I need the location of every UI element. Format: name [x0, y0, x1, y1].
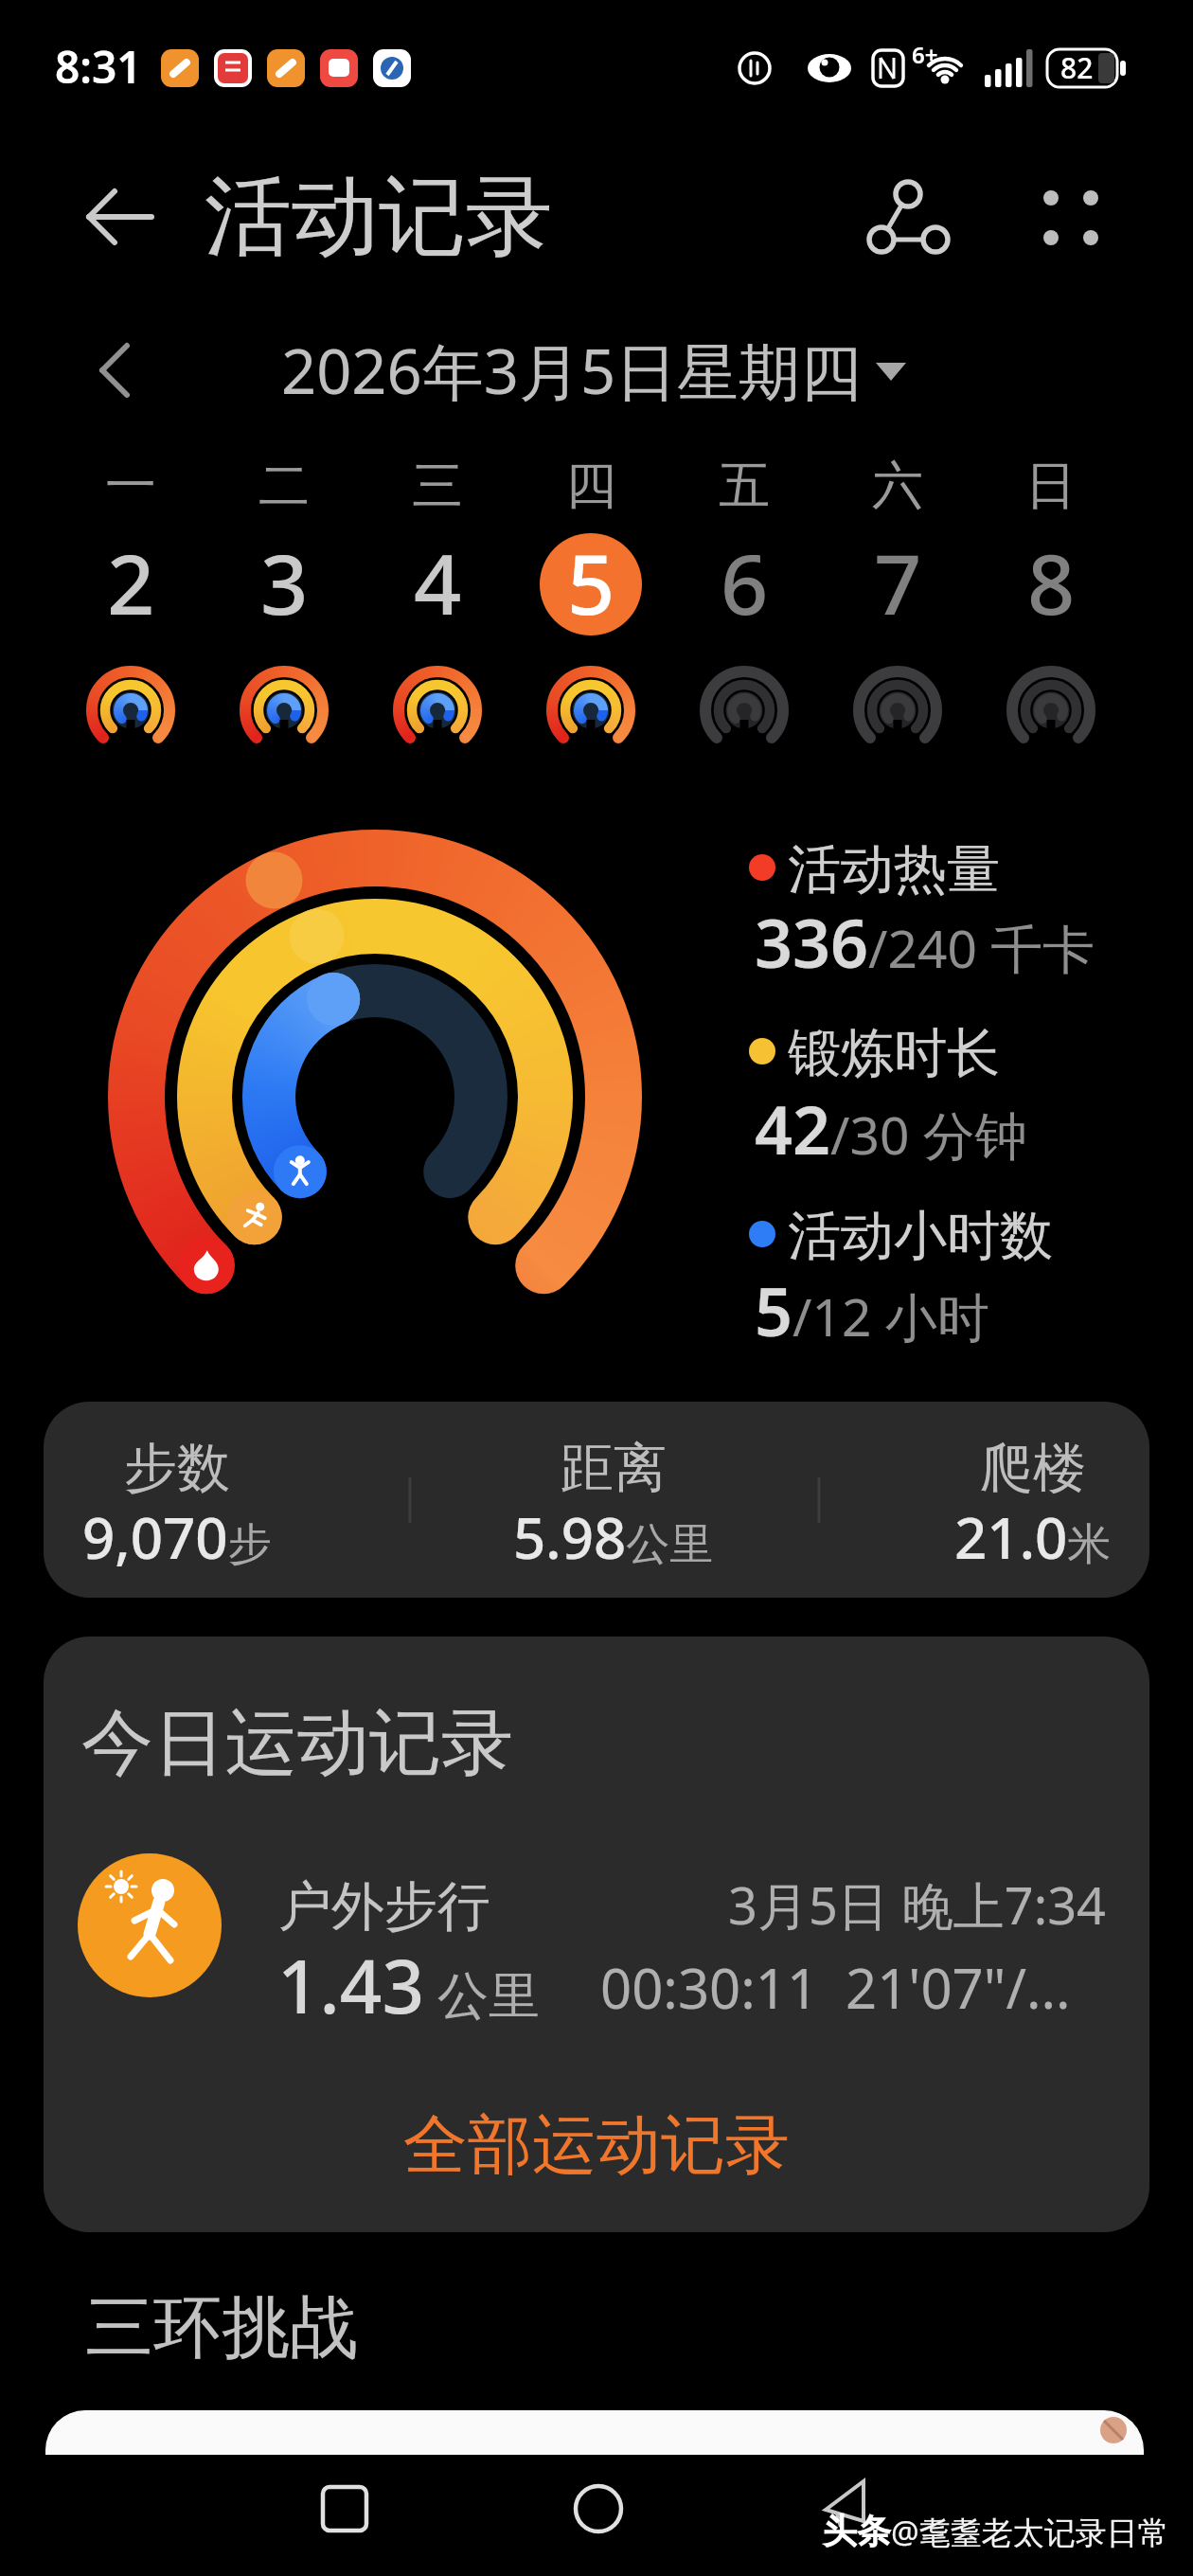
staticText: 1.43 公里	[277, 1935, 541, 2035]
staticText: 3月5日 晚上7:34	[728, 1869, 1106, 1940]
button[interactable]	[985, 511, 1117, 767]
button[interactable]	[678, 511, 810, 767]
staticText: 2026年3月5日星期四	[281, 329, 863, 413]
staticText: 6+	[912, 39, 938, 70]
staticText: 活动热量	[788, 836, 1000, 903]
staticText: 五	[719, 454, 770, 518]
staticText: 活动记录	[205, 162, 553, 272]
staticText: 21'07"/...	[846, 1950, 1071, 2025]
staticText: 一	[105, 454, 156, 518]
staticText: 户外步行	[278, 1873, 490, 1941]
staticText: 336/240 千卡	[755, 897, 1095, 987]
button[interactable]	[64, 511, 197, 767]
button[interactable]	[76, 1837, 1117, 2027]
staticText: 6	[721, 526, 769, 639]
button[interactable]	[44, 1402, 1149, 1598]
staticText: 8:31	[55, 37, 142, 97]
staticText: 四	[565, 454, 616, 518]
button[interactable]	[831, 511, 964, 767]
staticText: 三	[412, 454, 463, 518]
staticText: 21.0米	[954, 1498, 1112, 1576]
staticText: 8	[1027, 526, 1076, 639]
staticText: @耄耋老太记录日常	[891, 2511, 1169, 2553]
staticText: 00:30:11	[600, 1950, 819, 2025]
button[interactable]	[299, 2463, 390, 2554]
staticText: 锻炼时长	[788, 1020, 1000, 1087]
staticText: 4	[414, 526, 462, 639]
staticText: 全部运动记录	[403, 2105, 790, 2187]
staticText: 3	[260, 526, 309, 639]
button[interactable]	[265, 331, 928, 407]
staticText: 2	[107, 526, 155, 639]
staticText: 爬楼	[980, 1435, 1086, 1502]
staticText: 9,070步	[82, 1498, 272, 1576]
staticText: 今日运动记录	[81, 1698, 513, 1789]
staticText: 二	[258, 454, 310, 518]
staticText: 82	[1060, 48, 1094, 87]
staticText: 42/30 分钟	[755, 1083, 1027, 1173]
button[interactable]	[852, 175, 956, 260]
staticText: 日	[1025, 454, 1077, 518]
staticText: 5	[567, 526, 615, 639]
button[interactable]	[369, 2098, 824, 2192]
button[interactable]	[45, 2410, 1144, 2455]
staticText: 5/12 小时	[755, 1265, 989, 1355]
staticText: 距离	[561, 1435, 667, 1502]
button[interactable]	[66, 185, 161, 251]
staticText: 六	[872, 454, 923, 518]
staticText: 7	[874, 526, 922, 639]
button[interactable]	[525, 511, 657, 767]
staticText: 5.98公里	[513, 1498, 714, 1576]
button[interactable]	[553, 2463, 644, 2554]
staticText: 步数	[124, 1435, 230, 1502]
staticText: 头条	[823, 2510, 891, 2552]
staticText: 三环挑战	[85, 2285, 358, 2371]
button[interactable]	[218, 511, 350, 767]
button[interactable]	[1032, 175, 1117, 260]
button[interactable]	[540, 533, 642, 635]
button[interactable]	[371, 511, 504, 767]
staticText: 活动小时数	[788, 1203, 1053, 1270]
